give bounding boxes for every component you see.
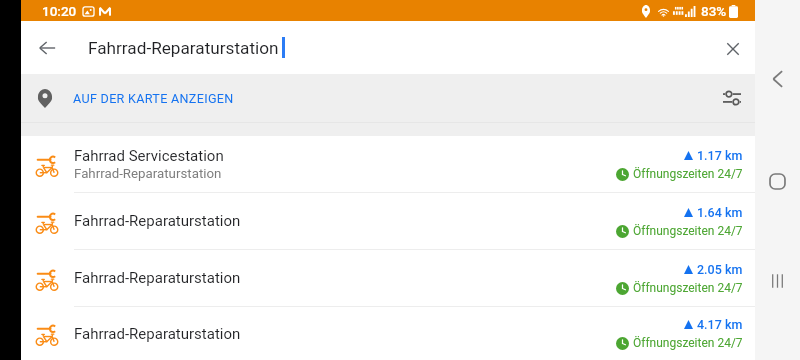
button[interactable]: Fahrrad-Reparaturstation [21, 193, 755, 249]
button[interactable]: Fahrrad Servicestation [21, 136, 755, 192]
button[interactable]: Fahrrad-Reparaturstation [21, 307, 755, 360]
staticText: Fahrrad-Reparaturstation [74, 212, 241, 230]
staticText: 1.17 km [697, 148, 743, 163]
button[interactable]: Clear search [710, 26, 754, 70]
button[interactable]: Fahrrad-Reparaturstation [21, 250, 755, 306]
staticText: Öffnungszeiten 24/7 [633, 224, 743, 238]
button[interactable]: Back [25, 26, 69, 70]
button[interactable]: Recent apps [755, 262, 800, 300]
staticText: Öffnungszeiten 24/7 [633, 167, 743, 181]
staticText: 4.17 km [697, 317, 743, 332]
button[interactable]: Filter [712, 78, 752, 118]
staticText: Fahrrad-Reparaturstation [74, 269, 241, 287]
staticText: Fahrrad-Reparaturstation [74, 325, 241, 343]
staticText: Fahrrad-Reparaturstation [88, 38, 279, 58]
button[interactable]: Back [755, 60, 800, 98]
staticText: Öffnungszeiten 24/7 [633, 281, 743, 295]
staticText: 2.05 km [697, 262, 743, 277]
staticText: 1.64 km [697, 205, 743, 220]
staticText: 10:20 [42, 3, 77, 19]
staticText: Fahrrad Servicestation [74, 147, 224, 165]
staticText: AUF DER KARTE ANZEIGEN [73, 91, 234, 106]
button[interactable]: Home [755, 162, 800, 200]
staticText: Fahrrad-Reparaturstation [74, 166, 222, 182]
staticText: 83% [701, 3, 727, 19]
button[interactable]: AUF DER KARTE ANZEIGEN [21, 74, 755, 122]
staticText: Öffnungszeiten 24/7 [633, 336, 743, 350]
